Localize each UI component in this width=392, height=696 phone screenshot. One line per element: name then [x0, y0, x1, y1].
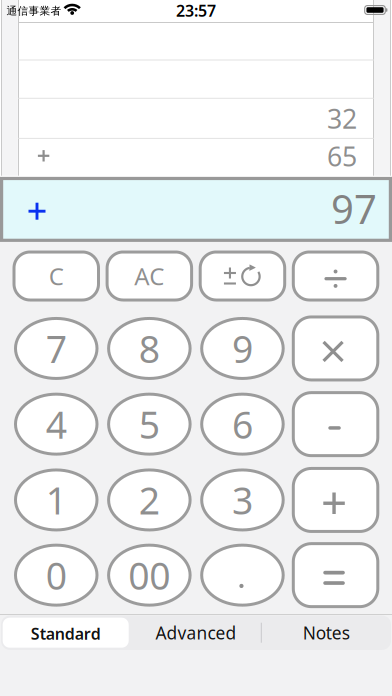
button[interactable]: 0 — [14, 544, 98, 607]
button[interactable]: Toggle sign — [200, 252, 285, 300]
staticText: 1 — [46, 475, 67, 525]
staticText: 8 — [139, 324, 160, 373]
button[interactable]: 7 — [14, 317, 98, 380]
button[interactable]: Add — [293, 468, 378, 531]
staticText: C — [49, 260, 64, 292]
staticText: 通信事業者 — [6, 4, 61, 17]
staticText: 4 — [46, 399, 67, 449]
staticText: 97 — [331, 182, 377, 235]
staticText: Notes — [303, 621, 350, 644]
button[interactable]: 2 — [107, 468, 192, 531]
button[interactable]: 6 — [200, 393, 285, 456]
staticText: 00 — [128, 550, 170, 600]
staticText: 23:57 — [176, 0, 216, 21]
staticText: AC — [134, 260, 164, 292]
button[interactable]: AC — [107, 252, 192, 300]
button[interactable]: Equals — [293, 544, 378, 607]
staticText: 65 — [327, 138, 357, 174]
button[interactable]: Advanced — [133, 618, 259, 648]
button[interactable]: 5 — [107, 393, 192, 456]
button[interactable]: 9 — [200, 317, 285, 380]
staticText: 32 — [327, 101, 357, 136]
staticText: 9 — [232, 324, 253, 373]
button[interactable]: 4 — [14, 393, 98, 456]
button[interactable]: 3 — [200, 468, 285, 531]
staticText: Advanced — [155, 621, 236, 644]
staticText: 3 — [232, 475, 253, 525]
staticText: 0 — [46, 550, 67, 600]
button[interactable]: 8 — [107, 317, 192, 380]
button[interactable]: 00 — [107, 544, 192, 607]
button[interactable]: Decimal point — [200, 544, 285, 607]
staticText: 6 — [232, 399, 253, 449]
staticText: Standard — [31, 623, 101, 644]
button[interactable]: Multiply — [293, 317, 378, 380]
staticText: 7 — [46, 324, 67, 373]
button[interactable]: Subtract — [293, 393, 378, 456]
button[interactable]: Notes — [263, 618, 389, 648]
button[interactable]: C — [14, 252, 98, 300]
button[interactable]: 1 — [14, 468, 98, 531]
staticText: 2 — [139, 475, 160, 525]
staticText: 5 — [139, 399, 160, 449]
button[interactable]: Divide — [293, 252, 378, 300]
button[interactable]: Standard — [3, 618, 129, 648]
